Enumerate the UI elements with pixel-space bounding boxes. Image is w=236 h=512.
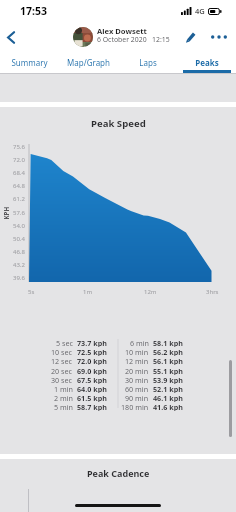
staticText: 67.5 kph [77,375,107,384]
staticText: 5 min [54,402,73,411]
staticText: 3hrs [206,288,219,296]
staticText: 46.1 kph [153,393,183,402]
staticText: 12:15 [152,35,170,44]
staticText: 30 sec [51,375,73,384]
staticText: 12m [144,288,157,296]
staticText: 57.6 [13,209,25,217]
staticText: Peaks [195,57,219,68]
staticText: Alex Dowsett [97,26,147,36]
staticText: 52.1 kph [153,384,183,393]
staticText: 64.0 kph [77,384,107,393]
staticText: 56.1 kph [153,356,183,365]
staticText: 17:53 [20,4,47,18]
button[interactable]: Laps [118,52,177,73]
staticText: 10 sec [51,347,73,356]
staticText: 10 min [125,347,149,356]
staticText: 54.0 [13,222,25,230]
staticText: 2 min [54,393,73,402]
button[interactable]: Map/Graph [59,52,118,73]
staticText: 58.7 kph [77,402,107,411]
button[interactable]: More options [207,22,231,52]
staticText: 72.0 kph [77,356,107,365]
staticText: Summary [11,57,48,68]
staticText: 72.0 [13,156,25,164]
staticText: 20 min [125,366,149,375]
staticText: 180 min [121,402,149,411]
staticText: 1m [83,288,93,296]
staticText: Laps [139,57,157,68]
staticText: KPH [1,206,9,219]
button[interactable]: Summary [0,52,59,73]
staticText: 1 min [54,384,73,393]
staticText: 75.6 [13,143,25,151]
staticText: 55.1 kph [153,366,183,375]
staticText: 73.7 kph [77,338,107,347]
staticText: 46.8 [13,248,25,256]
staticText: 64.8 [13,182,25,190]
staticText: 39.6 [13,274,25,282]
staticText: 4G [195,6,205,16]
staticText: Map/Graph [67,57,110,68]
button[interactable]: Back [0,22,22,52]
staticText: 72.5 kph [77,347,107,356]
staticText: 20 sec [51,366,73,375]
staticText: 6 min [130,338,149,347]
staticText: 43.2 [13,261,25,269]
button[interactable]: Edit [180,22,202,52]
staticText: 12 sec [51,356,73,365]
staticText: 53.9 kph [153,375,183,384]
staticText: 61.2 [13,195,25,203]
staticText: 5s [28,288,35,296]
staticText: Peak Cadence [87,467,150,479]
staticText: 60 min [125,384,149,393]
staticText: 90 min [125,393,149,402]
staticText: 5 sec [56,338,73,347]
button[interactable]: Peaks [177,52,236,73]
staticText: 6 October 2020 [97,35,147,44]
staticText: 12 min [125,356,149,365]
staticText: 68.4 [13,169,25,177]
staticText: Peak Speed [91,117,146,130]
staticText: 30 min [125,375,149,384]
staticText: 58.1 kph [153,338,183,347]
staticText: 69.0 kph [77,366,107,375]
staticText: 61.5 kph [77,393,107,402]
staticText: 56.2 kph [153,347,183,356]
staticText: 50.4 [13,235,25,243]
staticText: 41.6 kph [153,402,183,411]
